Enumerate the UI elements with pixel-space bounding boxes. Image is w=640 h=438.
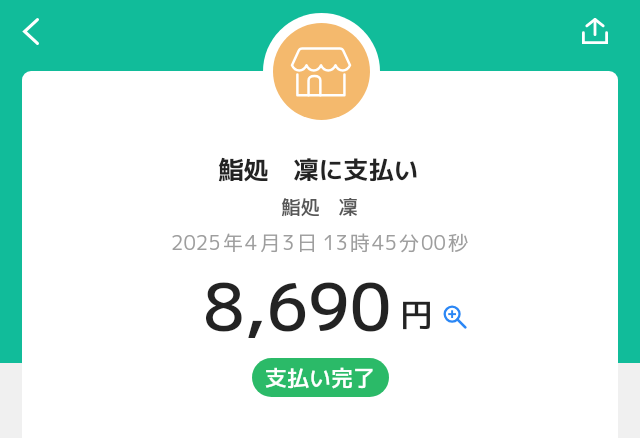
button[interactable]: 支払い完了: [252, 358, 389, 397]
staticText: 鮨処 凜: [281, 194, 358, 221]
staticText: 00: [421, 228, 446, 256]
staticText: 13: [323, 228, 348, 256]
button[interactable]: Zoom in: [442, 304, 468, 330]
staticText: 3: [282, 228, 295, 256]
staticText: 8,690: [203, 260, 392, 352]
staticText: 月: [260, 228, 280, 256]
button[interactable]: Back: [7, 7, 53, 53]
staticText: 日: [297, 228, 317, 256]
staticText: 時: [350, 228, 370, 256]
button[interactable]: Share: [570, 6, 618, 54]
staticText: 円: [400, 292, 433, 338]
staticText: 2025: [171, 228, 221, 256]
staticText: 45: [372, 228, 397, 256]
staticText: 秒: [448, 228, 468, 256]
staticText: 年: [223, 228, 243, 256]
staticText: 鮨処 凜に支払い: [218, 152, 419, 187]
staticText: 4: [245, 228, 258, 256]
staticText: 分: [399, 228, 419, 256]
staticText: 支払い完了: [265, 362, 376, 393]
